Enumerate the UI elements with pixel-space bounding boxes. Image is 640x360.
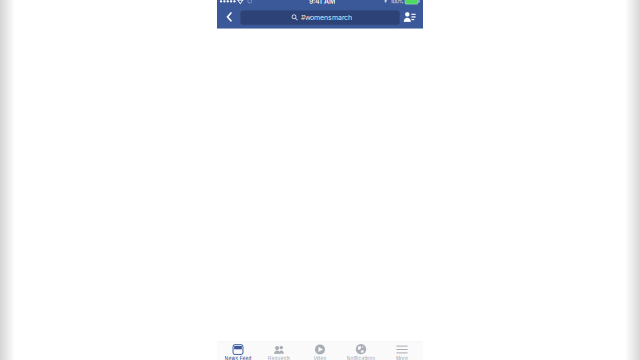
button[interactable]: News Feed bbox=[217, 341, 258, 360]
staticText: Requests bbox=[267, 354, 290, 360]
staticText: Video bbox=[313, 354, 326, 360]
staticText: 100% bbox=[391, 0, 404, 5]
button[interactable]: Friend requests bbox=[398, 6, 421, 28]
button[interactable]: Back bbox=[218, 6, 241, 28]
staticText: 9:41 AM bbox=[309, 0, 335, 6]
button[interactable]: Notifications bbox=[340, 341, 381, 360]
staticText: Notifications bbox=[346, 354, 375, 360]
staticText: #womensmarch bbox=[301, 13, 352, 22]
staticText: News Feed bbox=[224, 354, 251, 360]
staticText: More bbox=[396, 354, 408, 360]
button[interactable]: #womensmarch bbox=[240, 10, 400, 25]
button[interactable]: Video bbox=[299, 341, 340, 360]
button[interactable]: Requests bbox=[258, 341, 299, 360]
button[interactable]: More bbox=[381, 341, 422, 360]
